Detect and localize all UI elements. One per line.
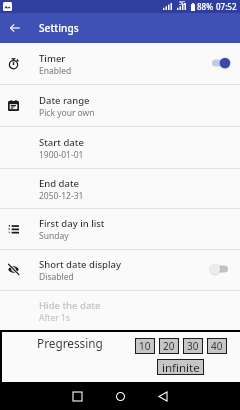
staticText: First day in list (39, 217, 105, 230)
staticText: 1900-01-01 (39, 149, 84, 161)
button[interactable]: End date (0, 168, 240, 209)
staticText: Short date display (39, 258, 121, 271)
staticText: End date (39, 177, 80, 190)
button[interactable]: Toggle Short date display (203, 249, 240, 290)
staticText: Settings (39, 21, 79, 35)
staticText: Enabled (39, 65, 72, 77)
staticText: infinite (162, 360, 200, 374)
button[interactable]: Home (105, 382, 135, 410)
staticText: Sunday (39, 230, 69, 242)
staticText: 10 (139, 339, 151, 353)
staticText: Date range (39, 94, 90, 107)
button[interactable]: Toggle Timer (203, 43, 240, 84)
button[interactable]: 20 (160, 339, 178, 353)
button[interactable]: 40 (208, 339, 226, 353)
button[interactable]: Timer (0, 43, 240, 84)
staticText: 20 (163, 339, 175, 353)
button[interactable]: Short date display (0, 249, 240, 290)
button[interactable]: Back (148, 382, 178, 410)
button[interactable]: Recents (62, 382, 92, 410)
button[interactable]: Hide the date (0, 290, 240, 331)
staticText: Timer (39, 52, 66, 65)
button[interactable]: Start date (0, 126, 240, 168)
button[interactable]: infinite (158, 360, 203, 374)
staticText: After 1s (39, 312, 70, 324)
staticText: 40 (211, 339, 223, 353)
button[interactable]: Date range (0, 84, 240, 126)
button[interactable]: 30 (184, 339, 202, 353)
button[interactable]: First day in list (0, 208, 240, 249)
staticText: Pregressing (37, 335, 103, 351)
staticText: Hide the date (39, 299, 101, 312)
button[interactable]: Back (5, 18, 25, 38)
staticText: Start date (39, 136, 84, 149)
staticText: Pick your own (39, 107, 95, 119)
button[interactable]: 10 (136, 339, 154, 353)
staticText: 88% (197, 1, 213, 12)
staticText: 3G (179, 0, 186, 7)
staticText: 2050-12-31 (39, 190, 84, 202)
staticText: Disabled (39, 271, 74, 283)
staticText: 07:52 (216, 1, 237, 12)
staticText: 30 (187, 339, 199, 353)
